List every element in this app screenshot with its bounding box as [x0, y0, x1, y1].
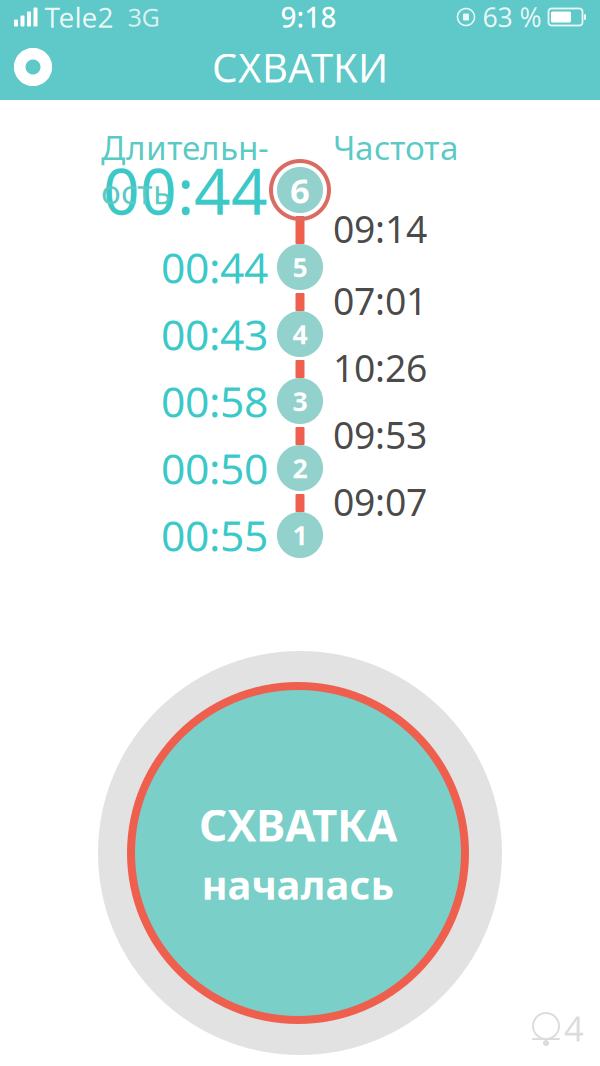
staticText: Частота [333, 125, 459, 169]
staticText: 09:14 [333, 204, 427, 253]
staticText: 07:01 [333, 276, 427, 325]
staticText: 09:53 [333, 410, 427, 459]
staticText: 09:07 [333, 477, 427, 526]
staticText: 5 [292, 249, 307, 285]
staticText: Tele2 [44, 0, 113, 36]
staticText: 00:58 [161, 373, 268, 429]
staticText: 00:44 [161, 239, 268, 295]
staticText: началась [201, 858, 394, 911]
staticText: 1 [292, 517, 307, 553]
staticText: СХВАТКА [199, 795, 397, 854]
staticText: 00:44 [103, 147, 268, 232]
button[interactable]: СХВАТКА [126, 681, 470, 1025]
staticText: 00:50 [161, 440, 268, 496]
staticText: 9:18 [280, 0, 336, 36]
staticText: 10:26 [333, 343, 427, 392]
staticText: Длительность [101, 125, 269, 213]
staticText: 00:55 [161, 507, 268, 563]
staticText: 6 [290, 167, 310, 213]
staticText: 3 [292, 383, 307, 419]
staticText: 4 [564, 1005, 584, 1051]
staticText: 3G [127, 0, 159, 34]
staticText: 00:43 [161, 306, 268, 362]
staticText: 2 [292, 450, 307, 486]
button[interactable]: Settings [0, 34, 66, 100]
staticText: СХВАТКИ [212, 40, 388, 93]
staticText: 4 [292, 316, 307, 352]
staticText: 63 % [482, 0, 541, 35]
